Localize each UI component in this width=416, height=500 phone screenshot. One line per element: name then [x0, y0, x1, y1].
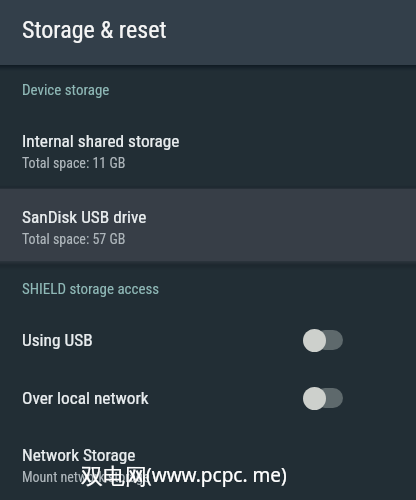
- staticText: Internal shared storage: [22, 131, 180, 151]
- button[interactable]: Internal shared storage: [0, 109, 416, 185]
- staticText: Storage & reset: [22, 16, 167, 44]
- staticText: Using USB: [22, 330, 303, 350]
- staticText: Total space: 11 GB: [22, 155, 126, 171]
- button[interactable]: Network Storage: [0, 427, 416, 500]
- staticText: Network Storage: [22, 445, 136, 465]
- button[interactable]: Over local network: [0, 369, 416, 427]
- staticText: Over local network: [22, 388, 303, 408]
- staticText: Mount network storage: [22, 469, 150, 485]
- staticText: SHIELD storage access: [22, 280, 160, 298]
- button[interactable]: SanDisk USB drive: [0, 189, 416, 261]
- staticText: (www.pcpc. me): [146, 462, 287, 488]
- staticText: SanDisk USB drive: [22, 207, 147, 227]
- staticText: 双电网: [81, 463, 147, 491]
- button[interactable]: Using USB: [0, 311, 416, 369]
- staticText: Total space: 57 GB: [22, 231, 126, 247]
- staticText: Device storage: [22, 81, 110, 99]
